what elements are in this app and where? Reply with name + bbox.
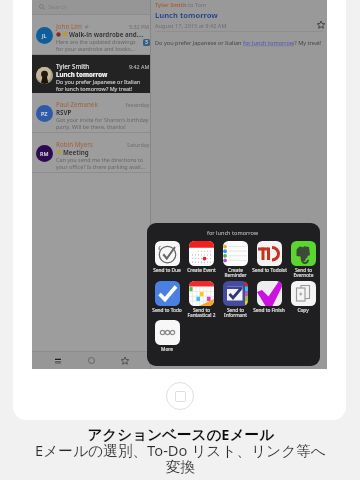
staticText: Meeting	[63, 148, 89, 156]
staticText: Send to Fantastical 2	[187, 307, 216, 319]
button[interactable]: Send to Finish	[252, 281, 286, 314]
button[interactable]: Send to Fantastical 2	[184, 281, 218, 319]
staticText: August 17, 2015 at 9:42 AM	[155, 22, 227, 30]
button[interactable]: Star message	[316, 20, 325, 29]
button[interactable]: Create Reminder	[218, 241, 252, 279]
staticText: Lunch tomorrow	[56, 70, 108, 78]
staticText: for lunch tomorrow? My treat!	[56, 85, 133, 92]
staticText: your office? Is there parking avail...	[56, 163, 145, 170]
staticText: 3	[145, 39, 148, 46]
staticText: アクションベースのEメール	[87, 424, 274, 444]
staticText: Create Reminder	[224, 267, 247, 279]
staticText: JL	[42, 32, 47, 39]
button[interactable]: Send to Due	[150, 241, 184, 274]
button[interactable]: Tyler Smith	[32, 55, 150, 93]
button[interactable]: Copy	[286, 281, 320, 314]
staticText: Send to Informant	[224, 307, 247, 319]
staticText: Walk-in wardrobe and....	[69, 30, 144, 38]
staticText: Send to Todoist	[252, 267, 287, 274]
button[interactable]: Home	[166, 382, 194, 410]
staticText: Tyler Smith to Tom	[155, 1, 207, 9]
staticText: Do you prefer Japanese or Italian	[56, 78, 141, 85]
staticText: Here are the updated drawings	[56, 38, 136, 45]
button[interactable]: Inbox	[50, 353, 65, 368]
button[interactable]: Send to Informant	[218, 281, 252, 319]
button[interactable]: PZ	[32, 93, 150, 132]
staticText: More	[161, 346, 173, 353]
staticText: Can you send me the directions to	[56, 156, 144, 163]
staticText: Tyler Smith	[56, 62, 90, 70]
button[interactable]: Starred	[117, 353, 132, 368]
staticText: Do you prefer Japanese or Italian for lu…	[155, 39, 322, 47]
button[interactable]: Create Event	[184, 241, 218, 274]
staticText: 9:42 AM	[129, 63, 150, 70]
button[interactable]: More	[150, 320, 184, 353]
staticText: Saturday	[127, 141, 150, 148]
staticText: RM	[40, 150, 49, 157]
staticText: Send to Todo	[152, 307, 182, 314]
staticText: Copy	[297, 307, 309, 314]
button[interactable]: Unread	[84, 353, 99, 368]
staticText: Lunch tomorrow	[155, 10, 218, 20]
staticText: Send to Due	[153, 267, 181, 274]
staticText: 5:32 PM	[129, 23, 150, 30]
button[interactable]: JL	[32, 15, 150, 54]
staticText: Got your invite for Sharon's birthday	[56, 116, 149, 123]
button[interactable]: RM	[32, 133, 150, 172]
staticText: Eメールの選別、To-Do リスト、リンク等へ 変換	[35, 440, 326, 476]
staticText: for lunch tomorrow	[207, 229, 259, 237]
button[interactable]: Send to Evernote	[286, 241, 320, 279]
staticText: Robin Myers	[56, 140, 93, 148]
staticText: RSVP	[56, 108, 72, 116]
staticText: party. Will be there, thanks!	[56, 123, 126, 130]
button[interactable]: Send to Todoist	[252, 241, 286, 274]
staticText: Create Event	[187, 267, 216, 274]
staticText: for your wardrobe and books...	[56, 45, 135, 52]
staticText: PZ	[41, 110, 48, 117]
staticText: Paul Zemanek	[56, 100, 98, 108]
staticText: Search	[48, 3, 67, 11]
staticText: John Lim	[56, 22, 82, 30]
button[interactable]: Send to Todo	[150, 281, 184, 314]
staticText: Send to Evernote	[293, 267, 314, 279]
staticText: Send to Finish	[253, 307, 285, 314]
staticText: Yesterday	[125, 101, 150, 108]
